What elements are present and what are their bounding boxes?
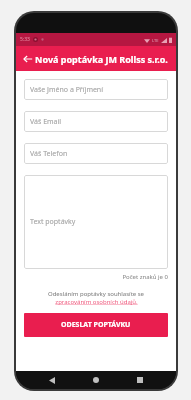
staticText: Odesláním poptávky souhlasíte se	[24, 290, 168, 298]
staticText: Text poptávky	[30, 217, 76, 227]
button[interactable]: ODESLAT POPTÁVKU	[24, 313, 168, 337]
staticText: Váš Telefon	[30, 149, 68, 159]
staticText: LTE	[152, 38, 159, 43]
button[interactable]: zpracováním osobních údajů.	[24, 298, 168, 306]
button[interactable]: Text poptávky	[24, 175, 168, 269]
staticText: Nová poptávka JM Rollss s.r.o.	[35, 53, 168, 65]
button[interactable]: Recent apps	[132, 372, 148, 388]
staticText: Vaše Jméno a Příjmení	[30, 85, 104, 95]
button[interactable]: Vaše Jméno a Příjmení	[24, 79, 168, 100]
button[interactable]: Home	[88, 372, 104, 388]
button[interactable]: Back	[19, 50, 37, 68]
staticText: Počet znaků je 0	[24, 273, 168, 281]
staticText: 5:33	[20, 36, 30, 43]
button[interactable]: Váš Email	[24, 111, 168, 132]
staticText: zpracováním osobních údajů.	[55, 298, 138, 306]
staticText: Váš Email	[30, 117, 62, 127]
button[interactable]: Back	[44, 372, 60, 388]
staticText: ODESLAT POPTÁVKU	[61, 320, 131, 330]
button[interactable]: Váš Telefon	[24, 143, 168, 164]
